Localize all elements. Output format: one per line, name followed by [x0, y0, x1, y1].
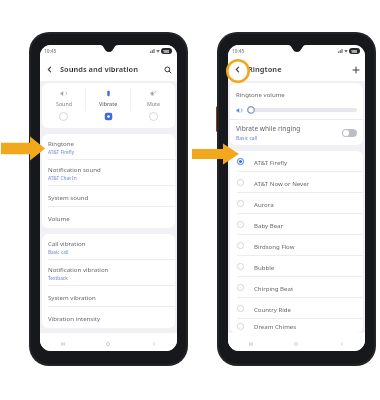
- staticText: Vibrate while ringing: [236, 124, 301, 133]
- staticText: Bubble: [254, 263, 275, 271]
- staticText: Notification sound: [48, 165, 101, 173]
- button[interactable]: Birdsong Flow: [230, 235, 363, 256]
- staticText: Sound: [56, 100, 72, 107]
- staticText: Aurora: [254, 200, 274, 208]
- staticText: Volume: [48, 214, 70, 222]
- staticText: System vibration: [48, 293, 96, 301]
- button[interactable]: Home: [85, 338, 131, 350]
- staticText: AT&T Now or Never: [254, 179, 310, 187]
- staticText: Textback: [48, 275, 68, 282]
- button[interactable]: System sound: [42, 186, 175, 207]
- staticText: 10:45: [232, 48, 245, 55]
- staticText: 10:45: [44, 48, 57, 55]
- button[interactable]: AT&T Now or Never: [230, 172, 363, 193]
- button[interactable]: Home: [273, 338, 319, 350]
- staticText: 100: [351, 49, 358, 54]
- button[interactable]: Volume: [42, 207, 175, 228]
- button[interactable]: AT&T Firefly: [230, 151, 363, 172]
- staticText: Birdsong Flow: [254, 242, 295, 250]
- button[interactable]: Notification vibration: [42, 260, 175, 286]
- staticText: AT&T Firefly: [48, 149, 75, 156]
- button[interactable]: Vibration intensity: [42, 307, 175, 328]
- staticText: Basic call: [236, 135, 258, 142]
- staticText: System sound: [48, 193, 89, 201]
- staticText: AT&T Chat In: [48, 175, 77, 182]
- staticText: Notification vibration: [48, 265, 109, 273]
- button[interactable]: Aurora: [230, 193, 363, 214]
- staticText: Mute: [147, 100, 160, 107]
- button[interactable]: Recents: [40, 338, 85, 350]
- button[interactable]: Recents: [228, 338, 273, 350]
- button[interactable]: System vibration: [42, 286, 175, 307]
- button[interactable]: Mute: [131, 83, 175, 128]
- staticText: Sounds and vibration: [60, 64, 138, 74]
- staticText: Chirping Beat: [254, 284, 294, 292]
- staticText: Ringtone: [248, 64, 282, 74]
- button[interactable]: Chirping Beat: [230, 277, 363, 298]
- button[interactable]: Back: [232, 64, 243, 75]
- staticText: Country Ride: [254, 305, 292, 313]
- staticText: Dream Chimes: [254, 322, 297, 330]
- button[interactable]: Back: [44, 64, 55, 75]
- staticText: Basic call: [48, 249, 69, 256]
- button[interactable]: Vibrate while ringing: [230, 120, 363, 145]
- staticText: Ringtone: [48, 139, 74, 147]
- staticText: Vibrate: [99, 100, 118, 107]
- button[interactable]: Bubble: [230, 256, 363, 277]
- button[interactable]: Baby Bear: [230, 214, 363, 235]
- button[interactable]: Sound: [42, 83, 85, 128]
- staticText: Ringtone volume: [236, 90, 285, 98]
- button[interactable]: Vibrate: [86, 83, 130, 128]
- staticText: Baby Bear: [254, 221, 284, 229]
- button[interactable]: Vibrate while ringing toggle: [342, 129, 357, 137]
- button[interactable]: Add: [350, 64, 361, 75]
- button[interactable]: Search: [162, 64, 173, 75]
- button[interactable]: Back: [131, 338, 177, 350]
- staticText: Vibration intensity: [48, 314, 101, 322]
- staticText: 100: [163, 49, 170, 54]
- staticText: AT&T Firefly: [254, 158, 288, 166]
- button[interactable]: Country Ride: [230, 298, 363, 319]
- staticText: Call vibration: [48, 239, 86, 247]
- button[interactable]: Call vibration: [42, 234, 175, 260]
- button[interactable]: Back: [319, 338, 365, 350]
- button[interactable]: Notification sound: [42, 160, 175, 186]
- button[interactable]: Ringtone: [42, 134, 175, 160]
- button[interactable]: Dream Chimes: [230, 319, 363, 333]
